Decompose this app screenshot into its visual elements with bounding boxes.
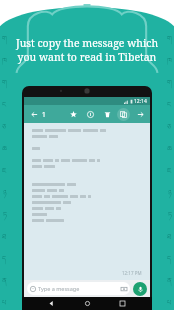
staticText: ཐ bbox=[167, 229, 172, 249]
staticText: ཉ bbox=[168, 185, 172, 205]
staticText: ག bbox=[167, 31, 172, 51]
staticText: ཇ bbox=[2, 163, 7, 183]
button[interactable]: Forward bbox=[134, 108, 146, 120]
staticText: ག bbox=[2, 31, 7, 51]
staticText: ཉ bbox=[3, 185, 7, 205]
staticText: ཆ bbox=[167, 141, 172, 161]
staticText: 1 bbox=[42, 110, 46, 119]
staticText: 12:17 PM bbox=[122, 270, 142, 276]
staticText: པ bbox=[167, 295, 172, 309]
staticText: ག bbox=[167, 75, 172, 95]
staticText: པ bbox=[2, 295, 7, 309]
staticText: ད bbox=[2, 251, 7, 271]
staticText: ག bbox=[2, 75, 7, 95]
button[interactable]: Back bbox=[46, 298, 57, 309]
button[interactable]: Info bbox=[84, 108, 96, 120]
staticText: 12:14 bbox=[134, 98, 147, 105]
staticText: Type a message bbox=[38, 285, 80, 292]
button[interactable]: Recents bbox=[117, 298, 128, 309]
button[interactable]: Record voice message bbox=[133, 282, 147, 296]
button[interactable]: Home bbox=[82, 298, 93, 309]
staticText: Just copy the message which you want to … bbox=[10, 36, 164, 64]
staticText: ཁ bbox=[2, 53, 7, 73]
button[interactable]: Star bbox=[67, 108, 79, 120]
button[interactable]: Back bbox=[28, 108, 40, 120]
staticText: ཅ bbox=[2, 119, 7, 139]
staticText: ཐ bbox=[2, 229, 7, 249]
staticText: ད bbox=[167, 251, 172, 271]
button[interactable]: Type a message bbox=[27, 282, 130, 295]
staticText: ཁ bbox=[167, 53, 172, 73]
staticText: ན bbox=[2, 273, 7, 293]
button[interactable]: Delete bbox=[101, 108, 113, 120]
staticText: ཇ bbox=[167, 163, 172, 183]
staticText: ཏ bbox=[168, 207, 172, 227]
staticText: ང bbox=[167, 97, 172, 117]
staticText: ཆ bbox=[2, 141, 7, 161]
staticText: ན bbox=[167, 273, 172, 293]
button[interactable]: Copy bbox=[117, 108, 130, 121]
staticText: ཏ bbox=[3, 207, 7, 227]
staticText: ཅ bbox=[167, 119, 172, 139]
staticText: ང bbox=[2, 97, 7, 117]
